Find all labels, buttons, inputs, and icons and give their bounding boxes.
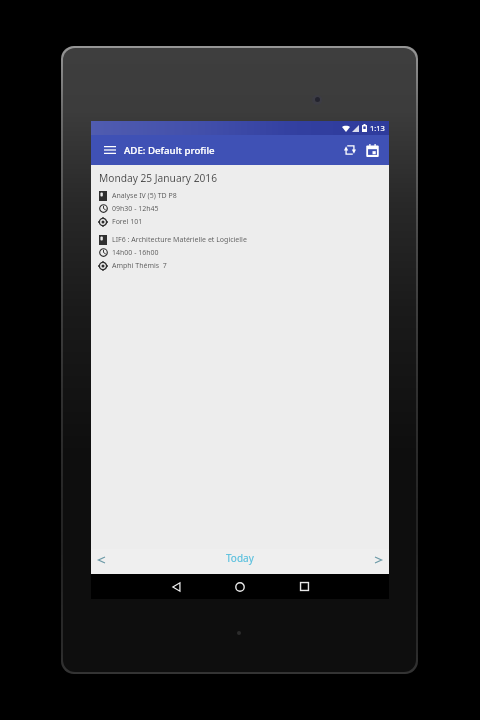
- button[interactable]: Home: [208, 574, 272, 599]
- staticText: Today: [226, 551, 254, 565]
- button[interactable]: Today: [200, 549, 280, 574]
- button[interactable]: Next day: [345, 549, 389, 574]
- button[interactable]: Back: [144, 574, 208, 599]
- staticText: 09h30 - 12h45: [112, 204, 159, 214]
- staticText: 1:13: [370, 123, 385, 133]
- staticText: LIF6 : Architecture Matérielle et Logici…: [112, 235, 247, 245]
- button[interactable]: Recent apps: [272, 574, 336, 599]
- button[interactable]: Pick date: [358, 135, 386, 165]
- staticText: Forel 101: [112, 217, 143, 227]
- button[interactable]: Synchronize: [330, 135, 358, 165]
- button[interactable]: LIF6 : Architecture Matérielle et Logici…: [98, 233, 389, 272]
- button[interactable]: Open navigation drawer: [91, 135, 119, 165]
- staticText: ADE: Default profile: [124, 144, 215, 157]
- staticText: 14h00 - 16h00: [112, 248, 159, 258]
- button[interactable]: Previous day: [91, 549, 135, 574]
- staticText: Amphi Thémis 7: [112, 261, 167, 271]
- staticText: Monday 25 January 2016: [99, 171, 217, 185]
- staticText: Analyse IV (5) TD P8: [112, 191, 177, 201]
- button[interactable]: Analyse IV (5) TD P8: [98, 189, 389, 228]
